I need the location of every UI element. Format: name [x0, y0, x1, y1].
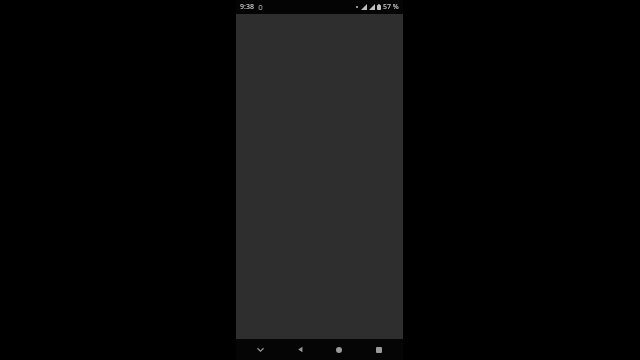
button[interactable]: Hide keyboard	[245, 339, 275, 360]
button[interactable]: Back	[285, 339, 315, 360]
button[interactable]: Home	[324, 339, 354, 360]
staticText: 9:38	[240, 2, 254, 12]
staticText: 57 %	[383, 2, 399, 12]
button[interactable]: Recent apps	[364, 339, 394, 360]
